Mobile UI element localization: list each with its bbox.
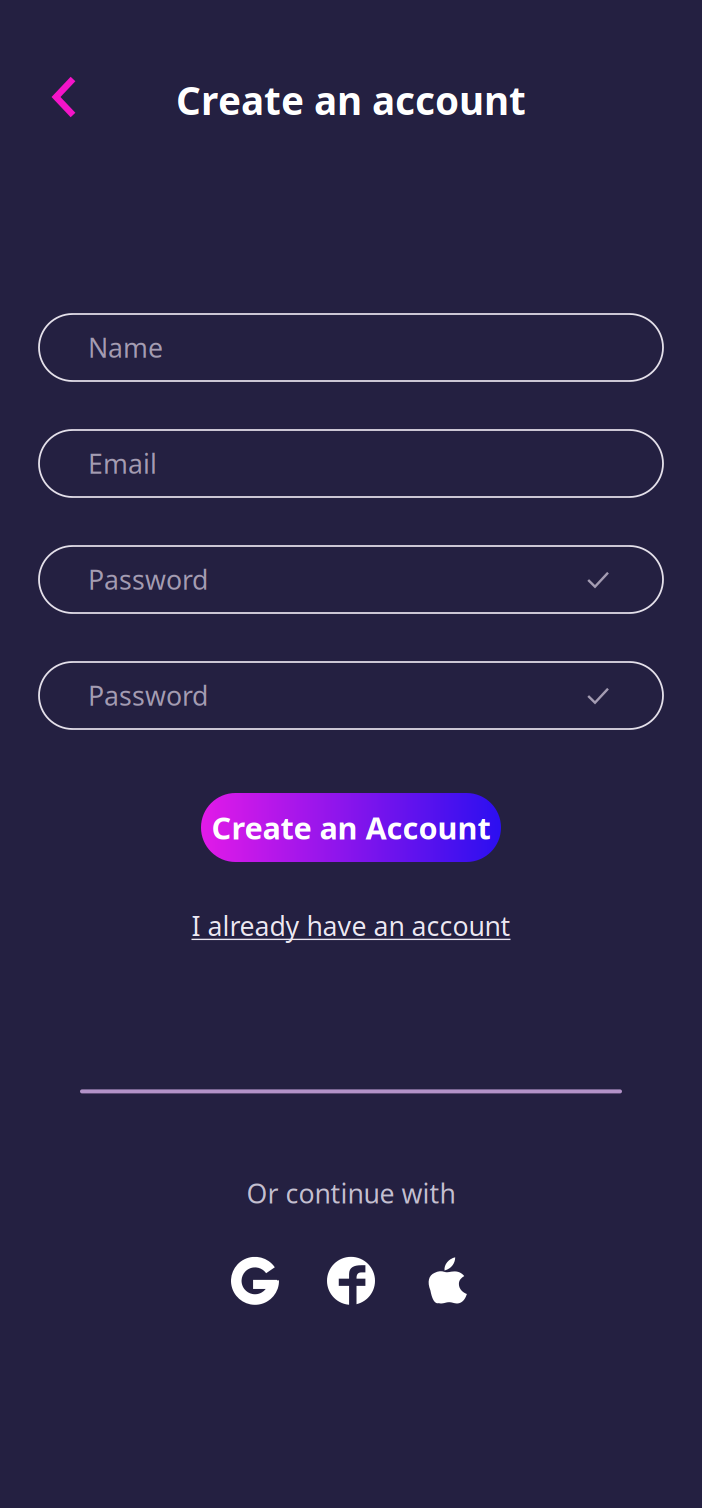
- button[interactable]: Email: [39, 430, 663, 497]
- button[interactable]: Create an Account: [201, 793, 501, 862]
- staticText: Password: [88, 678, 208, 713]
- button[interactable]: Back: [0, 63, 99, 137]
- staticText: Create an Account: [211, 807, 490, 848]
- button[interactable]: Password: [39, 662, 663, 729]
- staticText: Password: [88, 562, 208, 597]
- button[interactable]: Name: [39, 314, 663, 381]
- button[interactable]: Password: [39, 546, 663, 613]
- button[interactable]: Continue with Google: [207, 1251, 303, 1311]
- staticText: Name: [88, 330, 163, 365]
- staticText: Or continue with: [246, 1175, 455, 1211]
- button[interactable]: I already have an account: [191, 902, 510, 949]
- staticText: I already have an account: [191, 908, 510, 943]
- button[interactable]: Continue with Apple: [399, 1251, 495, 1311]
- button[interactable]: Continue with Facebook: [303, 1251, 399, 1311]
- staticText: Email: [88, 446, 157, 481]
- staticText: Create an account: [176, 74, 526, 126]
